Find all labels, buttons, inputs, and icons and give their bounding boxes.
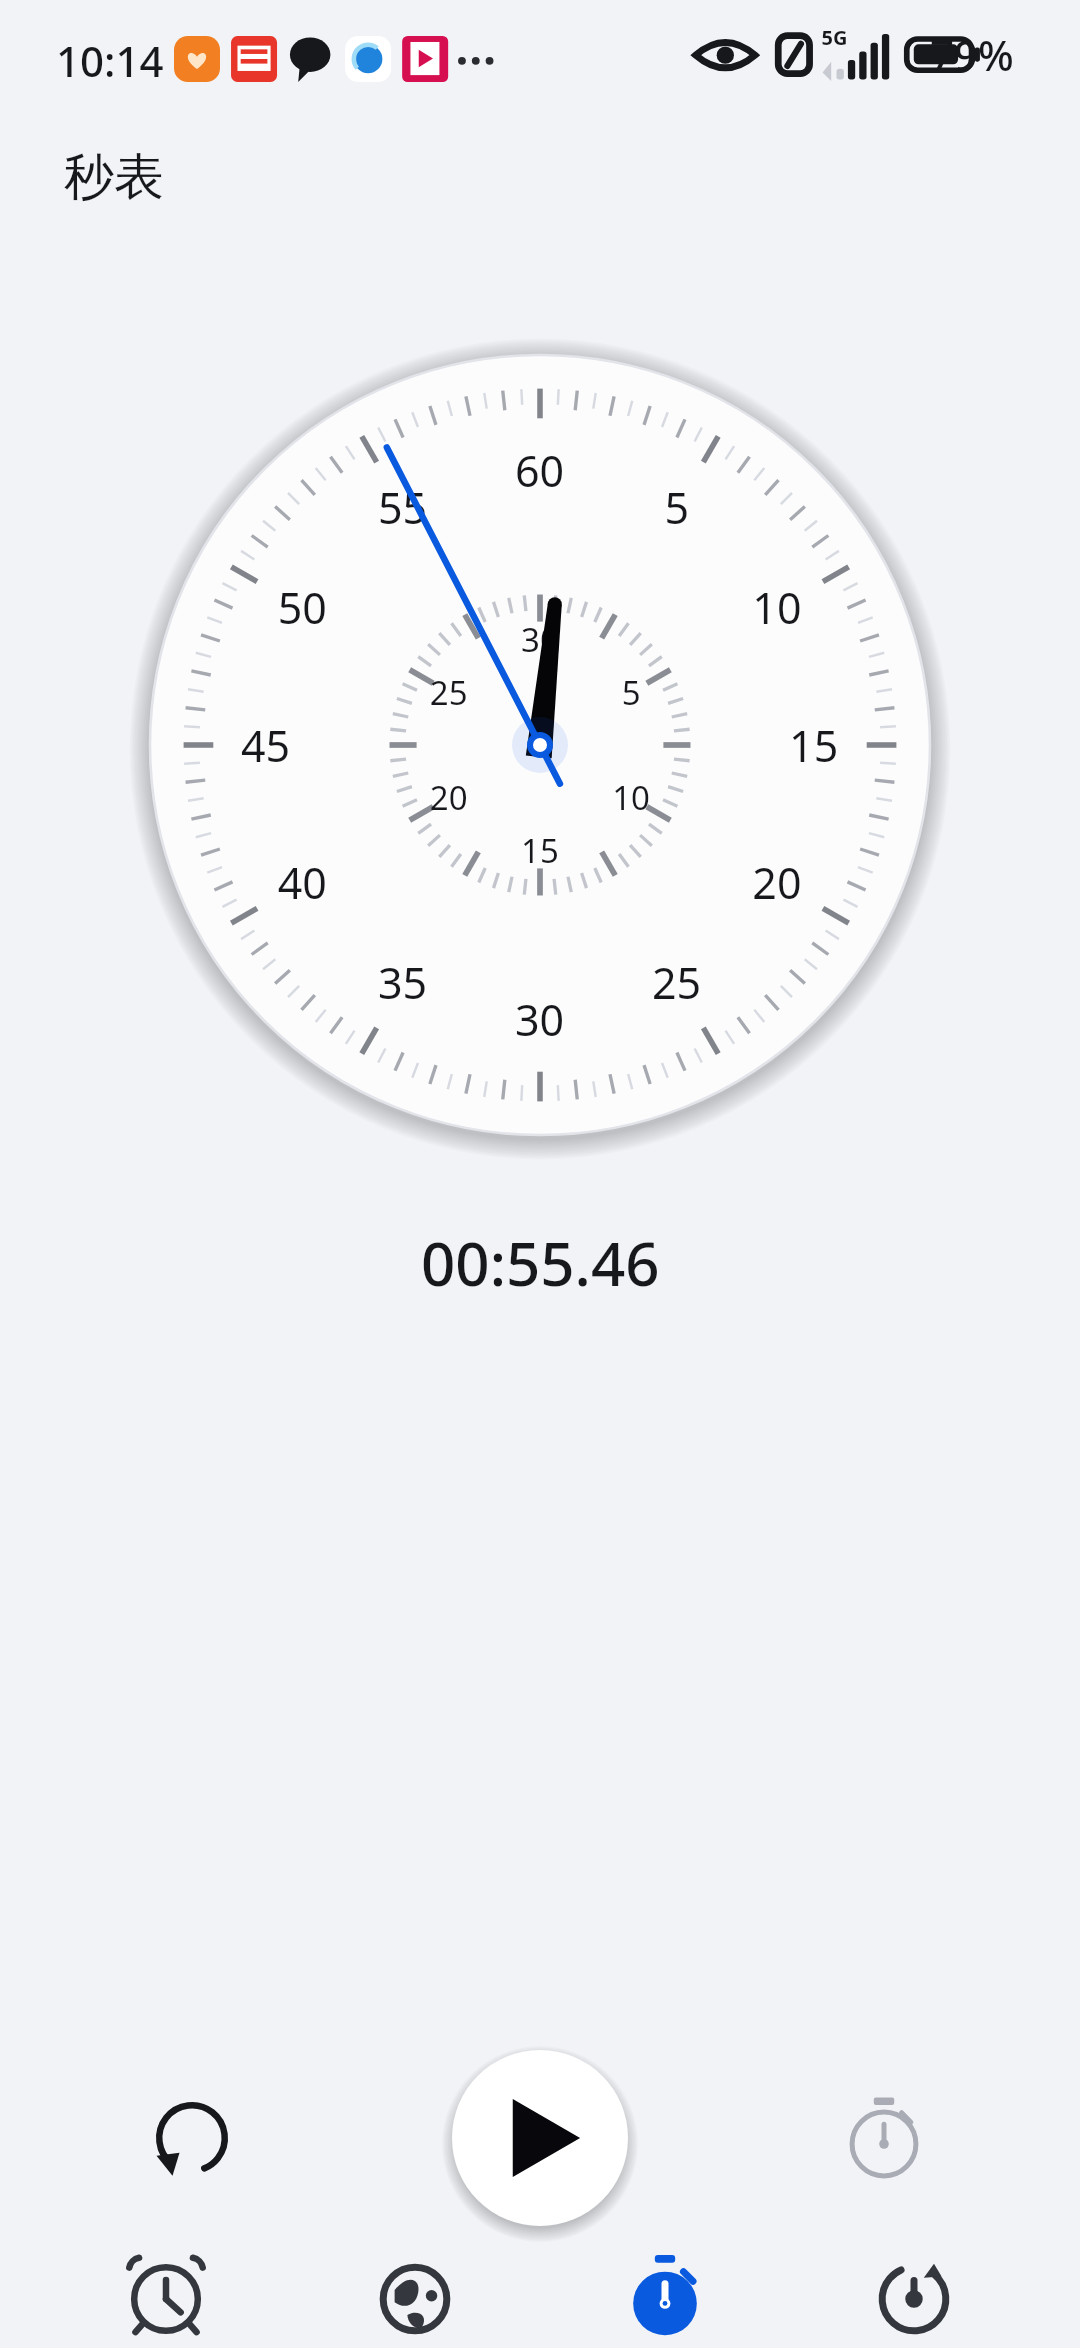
staticText: 秒表 — [64, 146, 164, 209]
button[interactable]: Alarm — [82, 2250, 250, 2348]
button[interactable]: Timer — [830, 2250, 998, 2348]
button[interactable]: Lap — [828, 2082, 940, 2194]
button[interactable]: Stopwatch — [581, 2250, 749, 2348]
staticText: 79% — [930, 26, 1014, 83]
button[interactable]: Start — [452, 2050, 628, 2226]
staticText: 00:55.46 — [421, 1222, 660, 1304]
staticText: 10:14 — [56, 32, 164, 89]
button[interactable]: World clock — [331, 2250, 499, 2348]
button[interactable]: Reset — [140, 2086, 244, 2190]
